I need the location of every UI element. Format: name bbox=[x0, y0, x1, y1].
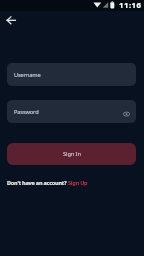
staticText: 11:16 bbox=[119, 0, 142, 11]
staticText: Sign In bbox=[63, 150, 81, 158]
button[interactable] bbox=[5, 15, 19, 26]
button[interactable]: Username bbox=[7, 63, 136, 86]
button[interactable]: Sign In bbox=[7, 143, 136, 165]
button[interactable]: Don't have an account? bbox=[7, 179, 88, 186]
staticText: Don't have an account? bbox=[7, 179, 68, 186]
staticText: Password bbox=[14, 108, 39, 116]
staticText: Username bbox=[14, 71, 41, 79]
button[interactable]: Password bbox=[7, 100, 136, 123]
staticText: Sign Up bbox=[68, 179, 88, 186]
